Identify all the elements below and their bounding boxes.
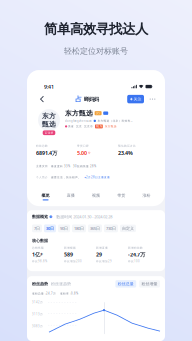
staticText: 环比98.8% [32, 259, 47, 263]
staticText: 粉丝涨趋势 [51, 281, 71, 286]
staticText: 数据概览 [32, 214, 48, 219]
staticText: dongfangzhenxuan [65, 119, 92, 123]
staticText: 垂直度科 33% [51, 164, 70, 168]
button[interactable]: 粉丝总量 [115, 280, 136, 288]
button[interactable]: More [148, 95, 157, 104]
staticText: 589 [64, 251, 73, 258]
staticText: 东方 甄选 [42, 112, 56, 128]
staticText: 健爱生活，快乐相声。 [51, 176, 81, 179]
button[interactable]: 带货 [109, 193, 134, 200]
staticText: 预估购买占比 [118, 144, 136, 147]
staticText: 1亿+ [32, 251, 43, 258]
staticText: 涨粉总量 -24.7万 [32, 292, 56, 295]
staticText: 365日 [90, 226, 100, 231]
button[interactable]: 180日 [72, 224, 86, 232]
staticText: 30款销售量 28% [73, 164, 96, 168]
staticText: ✦2月28日主播直播 [84, 175, 110, 179]
staticText: 环比增加29 [96, 259, 112, 263]
staticText: 北京 [76, 125, 82, 128]
staticText: 关注 [133, 97, 141, 101]
button[interactable]: 概览 [33, 193, 58, 200]
staticText: 占 [75, 95, 82, 103]
staticText: 概览 [42, 193, 50, 198]
button[interactable]: 粉丝增量 [139, 280, 160, 288]
staticText: 粉丝总数 [36, 144, 48, 147]
staticText: 东方甄选 [105, 125, 117, 128]
staticText: 30日 [46, 226, 54, 231]
staticText: 9:41 [44, 83, 54, 90]
staticText: 新增粉丝数 [128, 246, 143, 249]
staticText: 核心数据 [32, 238, 48, 243]
staticText: 东方甄选（北京）科技有… [98, 119, 133, 123]
button[interactable]: 730日 [104, 224, 118, 232]
staticText: 粉丝总量 [118, 281, 134, 286]
button[interactable]: 7日 [32, 224, 42, 232]
staticText: 分 [88, 151, 91, 155]
staticText: 180日 [74, 226, 84, 231]
staticText: 粉丝趋势 [32, 281, 48, 286]
staticText: 涨粉 [142, 193, 150, 198]
staticText: 百强榜 [44, 131, 53, 134]
staticText: 7日 [34, 226, 40, 231]
staticText: 北京市 [84, 125, 93, 128]
staticText: -24.7万 [128, 251, 145, 258]
staticText: 环比增加200 [64, 259, 82, 263]
button[interactable]: 视频 [83, 193, 109, 200]
staticText: 自定义 [122, 226, 134, 231]
staticText: 带货口碑 [77, 144, 89, 147]
staticText: 涨粉率 -0.8% [60, 292, 78, 295]
staticText: 个人简介 [36, 176, 48, 179]
staticText: 29 [96, 251, 102, 258]
button[interactable]: 自定义 [120, 225, 136, 232]
button[interactable]: 365日 [88, 224, 102, 232]
staticText: 环比100 [128, 259, 140, 263]
staticText: i [50, 215, 51, 218]
staticText: 5.00 [77, 149, 87, 156]
staticText: 总销售额 [32, 246, 44, 249]
staticText: 粉丝增量 [142, 281, 158, 286]
staticText: 美食 [68, 125, 74, 128]
button[interactable]: 90日 [58, 224, 70, 232]
staticText: 730日 [106, 226, 116, 231]
button[interactable]: 涨粉 [134, 193, 159, 200]
staticText: 主推女目 [36, 165, 48, 168]
staticText: 23.4% [118, 149, 133, 156]
staticText: 3083万 [32, 324, 43, 328]
staticText: LV5 [96, 111, 101, 115]
staticText: 新增直播 [96, 246, 108, 249]
staticText: 简单高效寻找达人 [44, 21, 148, 37]
staticText: MCN [96, 125, 102, 128]
staticText: 视频 [92, 193, 100, 198]
staticText: 3113万 [32, 312, 43, 316]
staticText: 直播 [67, 193, 75, 198]
button[interactable]: 关注 [127, 95, 144, 103]
button[interactable]: 直播 [58, 193, 83, 200]
button[interactable]: Back [37, 94, 47, 105]
button[interactable]: 30日 [44, 224, 56, 232]
staticText: 90日 [60, 226, 68, 231]
staticText: 蝉妈妈 [84, 96, 99, 102]
staticText: 新增视频 [64, 246, 76, 249]
staticText: 轻松定位对标账号 [64, 46, 128, 56]
staticText: 数据时间 2024.01.30 - 2024.02.28 [56, 214, 112, 219]
staticText: 3142万 [32, 301, 43, 304]
staticText: 6891.4万 [36, 149, 57, 156]
staticText: 东方甄选 [65, 109, 93, 117]
staticText: 带货 [117, 193, 125, 198]
